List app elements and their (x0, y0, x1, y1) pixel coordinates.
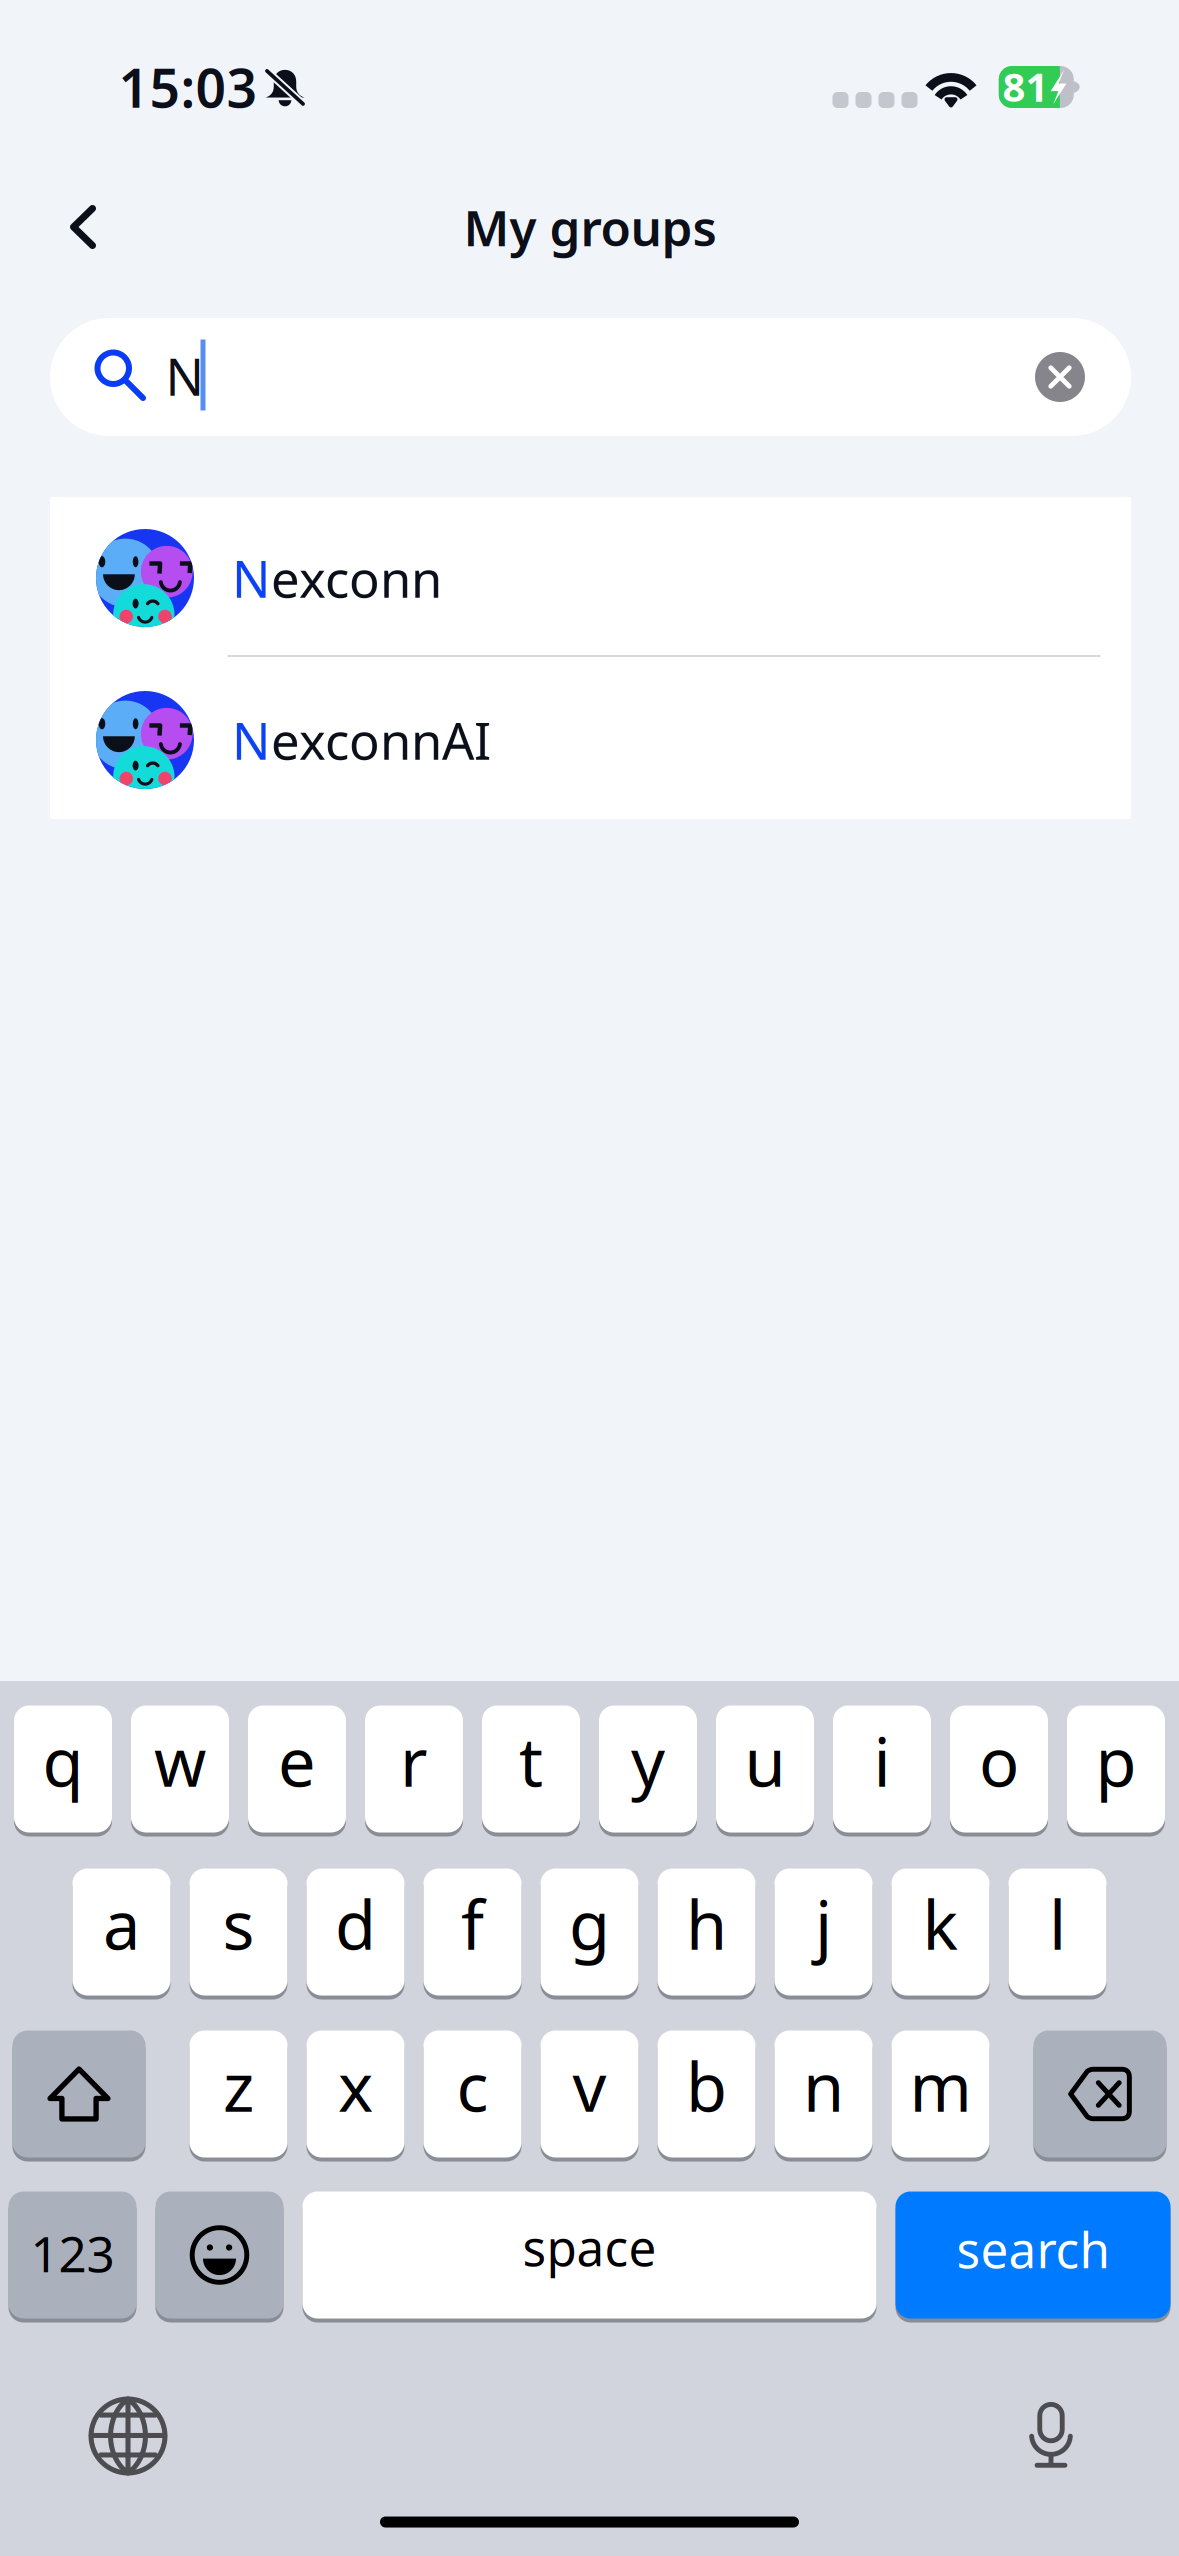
staticText: o (979, 1717, 1019, 1805)
button[interactable]: q (14, 1703, 112, 1834)
button[interactable]: i (833, 1703, 931, 1834)
staticText: My groups (463, 194, 716, 260)
staticText: k (922, 1880, 958, 1968)
staticText: N (165, 342, 204, 410)
button[interactable] (155, 2189, 283, 2320)
button[interactable] (1033, 2028, 1166, 2159)
staticText: r (400, 1717, 428, 1805)
button[interactable]: g (540, 1866, 638, 1997)
button[interactable]: v (540, 2028, 638, 2159)
button[interactable]: space (302, 2189, 876, 2320)
staticText: h (686, 1880, 727, 1968)
staticText: y (631, 1717, 665, 1805)
staticText: f (461, 1880, 484, 1968)
staticText: a (103, 1880, 140, 1968)
staticText: m (909, 2042, 971, 2130)
staticText: w (154, 1717, 206, 1805)
staticText: g (569, 1880, 610, 1968)
button[interactable]: t (482, 1703, 580, 1834)
staticText: j (815, 1880, 832, 1968)
button[interactable]: N (50, 659, 1131, 820)
staticText: x (338, 2042, 373, 2130)
staticText: 15:03 (118, 52, 257, 122)
button[interactable]: Dictate (996, 2380, 1106, 2490)
button[interactable]: N (50, 497, 1131, 658)
button[interactable] (12, 2028, 145, 2159)
button[interactable]: 123 (8, 2189, 136, 2320)
button[interactable]: c (423, 2028, 521, 2159)
button[interactable]: h (657, 1866, 755, 1997)
staticText: c (456, 2042, 488, 2130)
staticText: z (223, 2042, 254, 2130)
button[interactable]: a (72, 1866, 170, 1997)
button[interactable]: Back (35, 179, 131, 275)
button[interactable]: Next keyboard (73, 2381, 183, 2491)
button[interactable]: p (1067, 1703, 1165, 1834)
staticText: exconnAI (271, 706, 491, 774)
button[interactable]: y (599, 1703, 697, 1834)
staticText: i (873, 1717, 890, 1805)
staticText: space (522, 2214, 656, 2280)
button[interactable]: N (50, 318, 1131, 436)
button[interactable]: z (189, 2028, 287, 2159)
staticText: v (572, 2042, 606, 2130)
staticText: b (686, 2042, 727, 2130)
staticText: search (956, 2216, 1109, 2282)
staticText: N (232, 544, 271, 612)
staticText: e (278, 1717, 316, 1805)
button[interactable]: r (365, 1703, 463, 1834)
button[interactable]: d (306, 1866, 404, 1997)
staticText: u (744, 1717, 785, 1805)
button[interactable]: x (306, 2028, 404, 2159)
button[interactable]: s (189, 1866, 287, 1997)
staticText: l (1049, 1880, 1066, 1968)
staticText: d (335, 1880, 376, 1968)
button[interactable]: b (657, 2028, 755, 2159)
staticText: p (1095, 1717, 1136, 1805)
staticText: s (222, 1880, 254, 1968)
staticText: n (803, 2042, 844, 2130)
button[interactable]: l (1008, 1866, 1106, 1997)
button[interactable]: n (774, 2028, 872, 2159)
staticText: exconn (271, 544, 442, 612)
button[interactable]: u (716, 1703, 814, 1834)
staticText: 81 (1002, 60, 1048, 113)
button[interactable]: search (895, 2189, 1170, 2320)
staticText: t (519, 1717, 543, 1805)
button[interactable]: k (891, 1866, 989, 1997)
button[interactable]: o (950, 1703, 1048, 1834)
button[interactable]: m (891, 2028, 989, 2159)
button[interactable]: e (248, 1703, 346, 1834)
staticText: N (232, 706, 271, 774)
button[interactable]: f (423, 1866, 521, 1997)
button[interactable]: w (131, 1703, 229, 1834)
staticText: 123 (30, 2220, 114, 2286)
staticText: q (42, 1717, 83, 1805)
button[interactable]: j (774, 1866, 872, 1997)
